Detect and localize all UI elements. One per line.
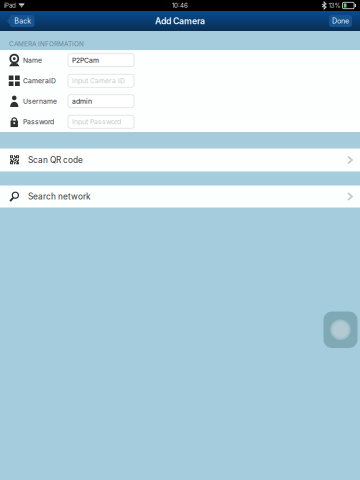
staticText: Search network bbox=[28, 191, 91, 201]
staticText: Password bbox=[23, 118, 54, 126]
staticText: P2PCam bbox=[72, 56, 99, 64]
button[interactable]: Scan QR code bbox=[0, 148, 360, 171]
button[interactable]: Done bbox=[329, 15, 352, 27]
button[interactable]: Back bbox=[7, 15, 34, 27]
staticText: Username bbox=[23, 97, 57, 105]
staticText: admin bbox=[72, 97, 92, 105]
staticText: Add Camera bbox=[155, 16, 205, 26]
staticText: Back bbox=[14, 17, 31, 25]
staticText: iPad bbox=[4, 2, 16, 9]
staticText: CameraID bbox=[23, 77, 56, 85]
staticText: Input Password bbox=[72, 118, 121, 126]
staticText: Done bbox=[332, 17, 349, 25]
button[interactable]: Search network bbox=[0, 185, 360, 207]
button[interactable]: AssistiveTouch bbox=[323, 311, 357, 348]
staticText: 13% bbox=[329, 2, 341, 9]
staticText: Scan QR code bbox=[28, 155, 83, 165]
staticText: 10:46 bbox=[172, 2, 188, 9]
staticText: CAMERA INFORMATION bbox=[9, 40, 84, 48]
staticText: Input Camera ID bbox=[72, 77, 125, 85]
staticText: Name bbox=[23, 56, 42, 64]
